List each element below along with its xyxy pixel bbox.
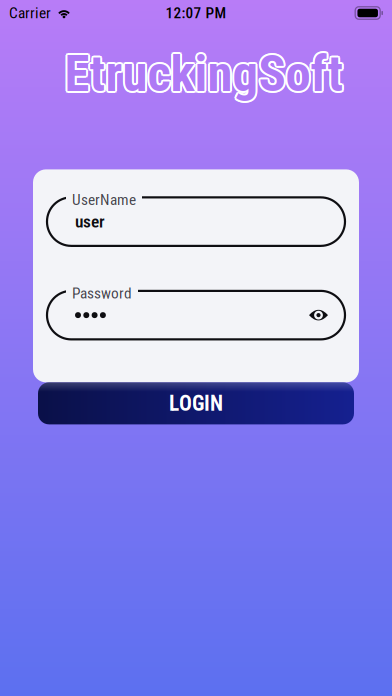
staticText: EtruckingSoft: [63, 43, 342, 102]
staticText: EtruckingSoft: [66, 44, 345, 103]
staticText: UserName: [72, 191, 136, 209]
staticText: EtruckingSoft: [64, 46, 343, 105]
staticText: 12:07 PM: [165, 4, 226, 22]
staticText: Carrier: [9, 4, 51, 22]
staticText: EtruckingSoft: [62, 44, 341, 103]
staticText: user: [75, 211, 105, 232]
staticText: EtruckingSoft: [63, 45, 342, 105]
staticText: EtruckingSoft: [66, 45, 345, 105]
staticText: Password: [72, 284, 132, 302]
staticText: LOGIN: [169, 391, 223, 416]
button[interactable]: LOGIN: [38, 382, 354, 424]
staticText: EtruckingSoft: [64, 44, 343, 103]
staticText: EtruckingSoft: [66, 43, 345, 102]
staticText: EtruckingSoft: [64, 42, 343, 101]
button[interactable]: Password: [47, 291, 345, 339]
button[interactable]: user: [47, 197, 345, 246]
